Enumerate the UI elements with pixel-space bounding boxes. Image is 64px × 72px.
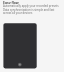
staticText: Easy flow [3,0,19,4]
staticText: Data synchronization is simple and fast … [3,8,59,15]
button[interactable]: Preview [0,0,64,72]
staticText: Automatically apply your recorded preset… [3,4,59,8]
